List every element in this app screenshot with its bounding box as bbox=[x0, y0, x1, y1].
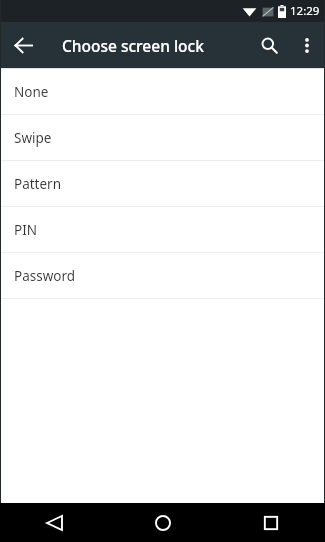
button[interactable]: Recent apps bbox=[217, 503, 325, 542]
staticText: PIN bbox=[14, 221, 38, 239]
button[interactable]: Swipe bbox=[0, 115, 325, 160]
button[interactable]: Back bbox=[0, 503, 109, 542]
button[interactable]: Back bbox=[0, 22, 46, 68]
staticText: Choose screen lock bbox=[62, 35, 204, 56]
staticText: Swipe bbox=[14, 129, 52, 147]
staticText: Password bbox=[14, 267, 76, 285]
button[interactable]: None bbox=[0, 69, 325, 114]
button[interactable]: Password bbox=[0, 253, 325, 298]
staticText: 12:29 bbox=[290, 3, 320, 19]
button[interactable]: Home bbox=[109, 503, 217, 542]
staticText: Pattern bbox=[14, 175, 62, 193]
button[interactable]: Pattern bbox=[0, 161, 325, 206]
button[interactable]: Search bbox=[249, 22, 289, 68]
button[interactable]: More options bbox=[289, 22, 325, 68]
staticText: None bbox=[14, 83, 49, 101]
button[interactable]: PIN bbox=[0, 207, 325, 252]
